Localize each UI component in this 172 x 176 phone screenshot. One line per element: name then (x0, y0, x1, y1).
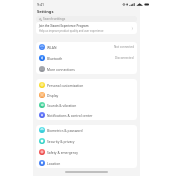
staticText: Bluetooth (47, 56, 63, 60)
button[interactable]: Join the Xiaomi Experience Program (36, 22, 137, 34)
button[interactable]: Display (36, 90, 137, 100)
staticText: Biometrics & password (47, 128, 83, 132)
button[interactable]: Safety & emergency (36, 146, 137, 157)
button[interactable]: More connections (36, 63, 137, 74)
staticText: Personal customization (47, 83, 84, 87)
staticText: Settings (37, 9, 54, 14)
button[interactable]: Biometrics & password (36, 125, 137, 135)
staticText: Join the Xiaomi Experience Program (39, 24, 89, 28)
button[interactable]: Personal customization (36, 79, 137, 90)
staticText: Location (47, 161, 61, 165)
staticText: Search settings (43, 17, 66, 21)
staticText: More connections (47, 67, 75, 71)
button[interactable]: Sounds & vibration (36, 100, 137, 110)
button[interactable]: Security & privacy (36, 135, 137, 146)
staticText: Notifications & control center (47, 113, 93, 117)
staticText: Disconnected (115, 56, 134, 60)
staticText: 9:41 (37, 2, 45, 7)
button[interactable]: Search settings (36, 16, 137, 22)
staticText: Sounds & vibration (47, 103, 77, 107)
button[interactable]: Bluetooth (36, 52, 137, 63)
button[interactable]: Location (36, 157, 137, 168)
button[interactable]: Notifications & control center (36, 110, 137, 120)
staticText: Help us improve product quality and user… (39, 29, 104, 33)
staticText: Safety & emergency (47, 150, 78, 154)
button[interactable]: WLAN (36, 42, 137, 52)
staticText: WLAN (47, 45, 57, 49)
staticText: Display (47, 93, 59, 97)
staticText: Not connected (114, 45, 134, 49)
staticText: Security & privacy (47, 139, 75, 143)
